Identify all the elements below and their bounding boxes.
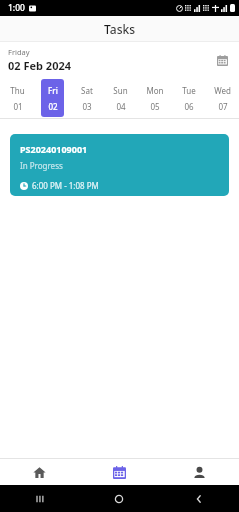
staticText: 02 xyxy=(48,101,58,112)
button[interactable]: Sun xyxy=(109,79,132,117)
staticText: 03 xyxy=(82,101,92,112)
staticText: 01 xyxy=(13,101,23,112)
staticText: Fri xyxy=(48,85,58,96)
button[interactable]: Sat xyxy=(75,79,98,117)
staticText: Sun xyxy=(113,85,128,96)
button[interactable]: Wed xyxy=(211,79,234,117)
staticText: In Progress xyxy=(20,160,63,171)
button[interactable]: Profile xyxy=(159,459,239,485)
staticText: Tasks xyxy=(104,21,136,37)
staticText: 02 Feb 2024 xyxy=(8,58,72,73)
staticText: Friday xyxy=(8,47,30,57)
button[interactable]: Fri xyxy=(41,79,64,117)
staticText: Wed xyxy=(214,85,231,96)
staticText: Sat xyxy=(81,85,93,96)
staticText: Tue xyxy=(182,85,196,96)
staticText: PS20240109001 xyxy=(20,143,88,155)
staticText: 6:00 PM - 1:08 PM xyxy=(32,180,99,191)
staticText: Thu xyxy=(10,85,25,96)
staticText: 07 xyxy=(218,101,228,112)
staticText: 06 xyxy=(184,101,194,112)
button[interactable]: PS20240109001 xyxy=(10,134,229,196)
button[interactable]: Home xyxy=(0,459,79,485)
button[interactable]: Tasks xyxy=(0,16,239,42)
button[interactable]: Tue xyxy=(177,79,200,117)
staticText: Mon xyxy=(146,85,164,96)
staticText: 1:00 xyxy=(8,2,25,14)
button[interactable]: Tasks calendar xyxy=(79,459,159,485)
button[interactable]: Thu xyxy=(6,79,29,117)
button[interactable]: Pick date xyxy=(211,49,233,71)
button[interactable]: Mon xyxy=(143,79,166,117)
staticText: 04 xyxy=(116,101,126,112)
staticText: 05 xyxy=(150,101,160,112)
